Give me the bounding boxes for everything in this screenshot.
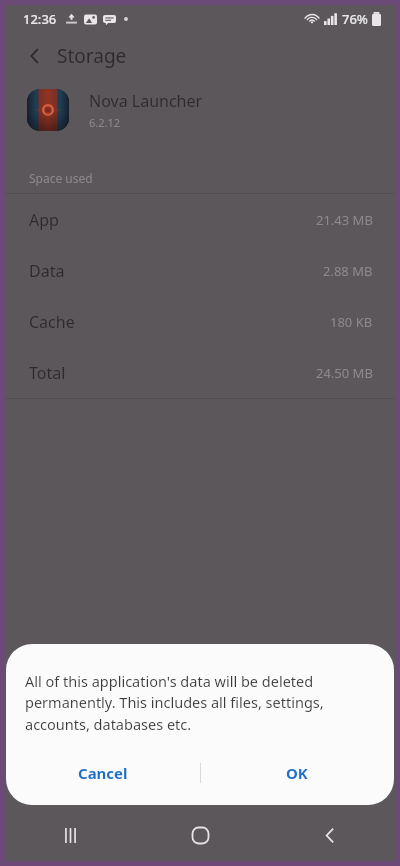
- staticText: App: [29, 209, 59, 231]
- staticText: 76%: [342, 10, 368, 28]
- button[interactable]: Data: [5, 245, 395, 296]
- staticText: Data: [29, 260, 65, 282]
- staticText: Cancel: [78, 763, 128, 783]
- button[interactable]: App: [5, 194, 395, 245]
- staticText: Cache: [29, 311, 75, 333]
- staticText: 24.50 MB: [316, 364, 373, 382]
- staticText: 12:36: [23, 10, 57, 28]
- button[interactable]: Total: [5, 347, 395, 398]
- staticText: Space used: [29, 170, 93, 186]
- button[interactable]: Recent apps: [5, 809, 135, 861]
- staticText: 2.88 MB: [323, 262, 373, 280]
- button[interactable]: Back: [15, 36, 55, 76]
- button[interactable]: Cancel: [6, 745, 200, 801]
- button[interactable]: OK: [200, 745, 394, 801]
- staticText: 6.2.12: [89, 115, 121, 130]
- staticText: Storage: [57, 43, 127, 69]
- staticText: OK: [286, 763, 308, 783]
- button[interactable]: Cache: [5, 296, 395, 347]
- staticText: 21.43 MB: [316, 211, 373, 229]
- button[interactable]: Home: [135, 809, 265, 861]
- button[interactable]: Nova Launcher: [5, 79, 395, 141]
- staticText: Nova Launcher: [89, 90, 203, 112]
- staticText: 180 KB: [330, 313, 373, 331]
- staticText: All of this application's data will be d…: [25, 671, 380, 734]
- button[interactable]: Back: [265, 809, 395, 861]
- staticText: Total: [29, 362, 66, 384]
